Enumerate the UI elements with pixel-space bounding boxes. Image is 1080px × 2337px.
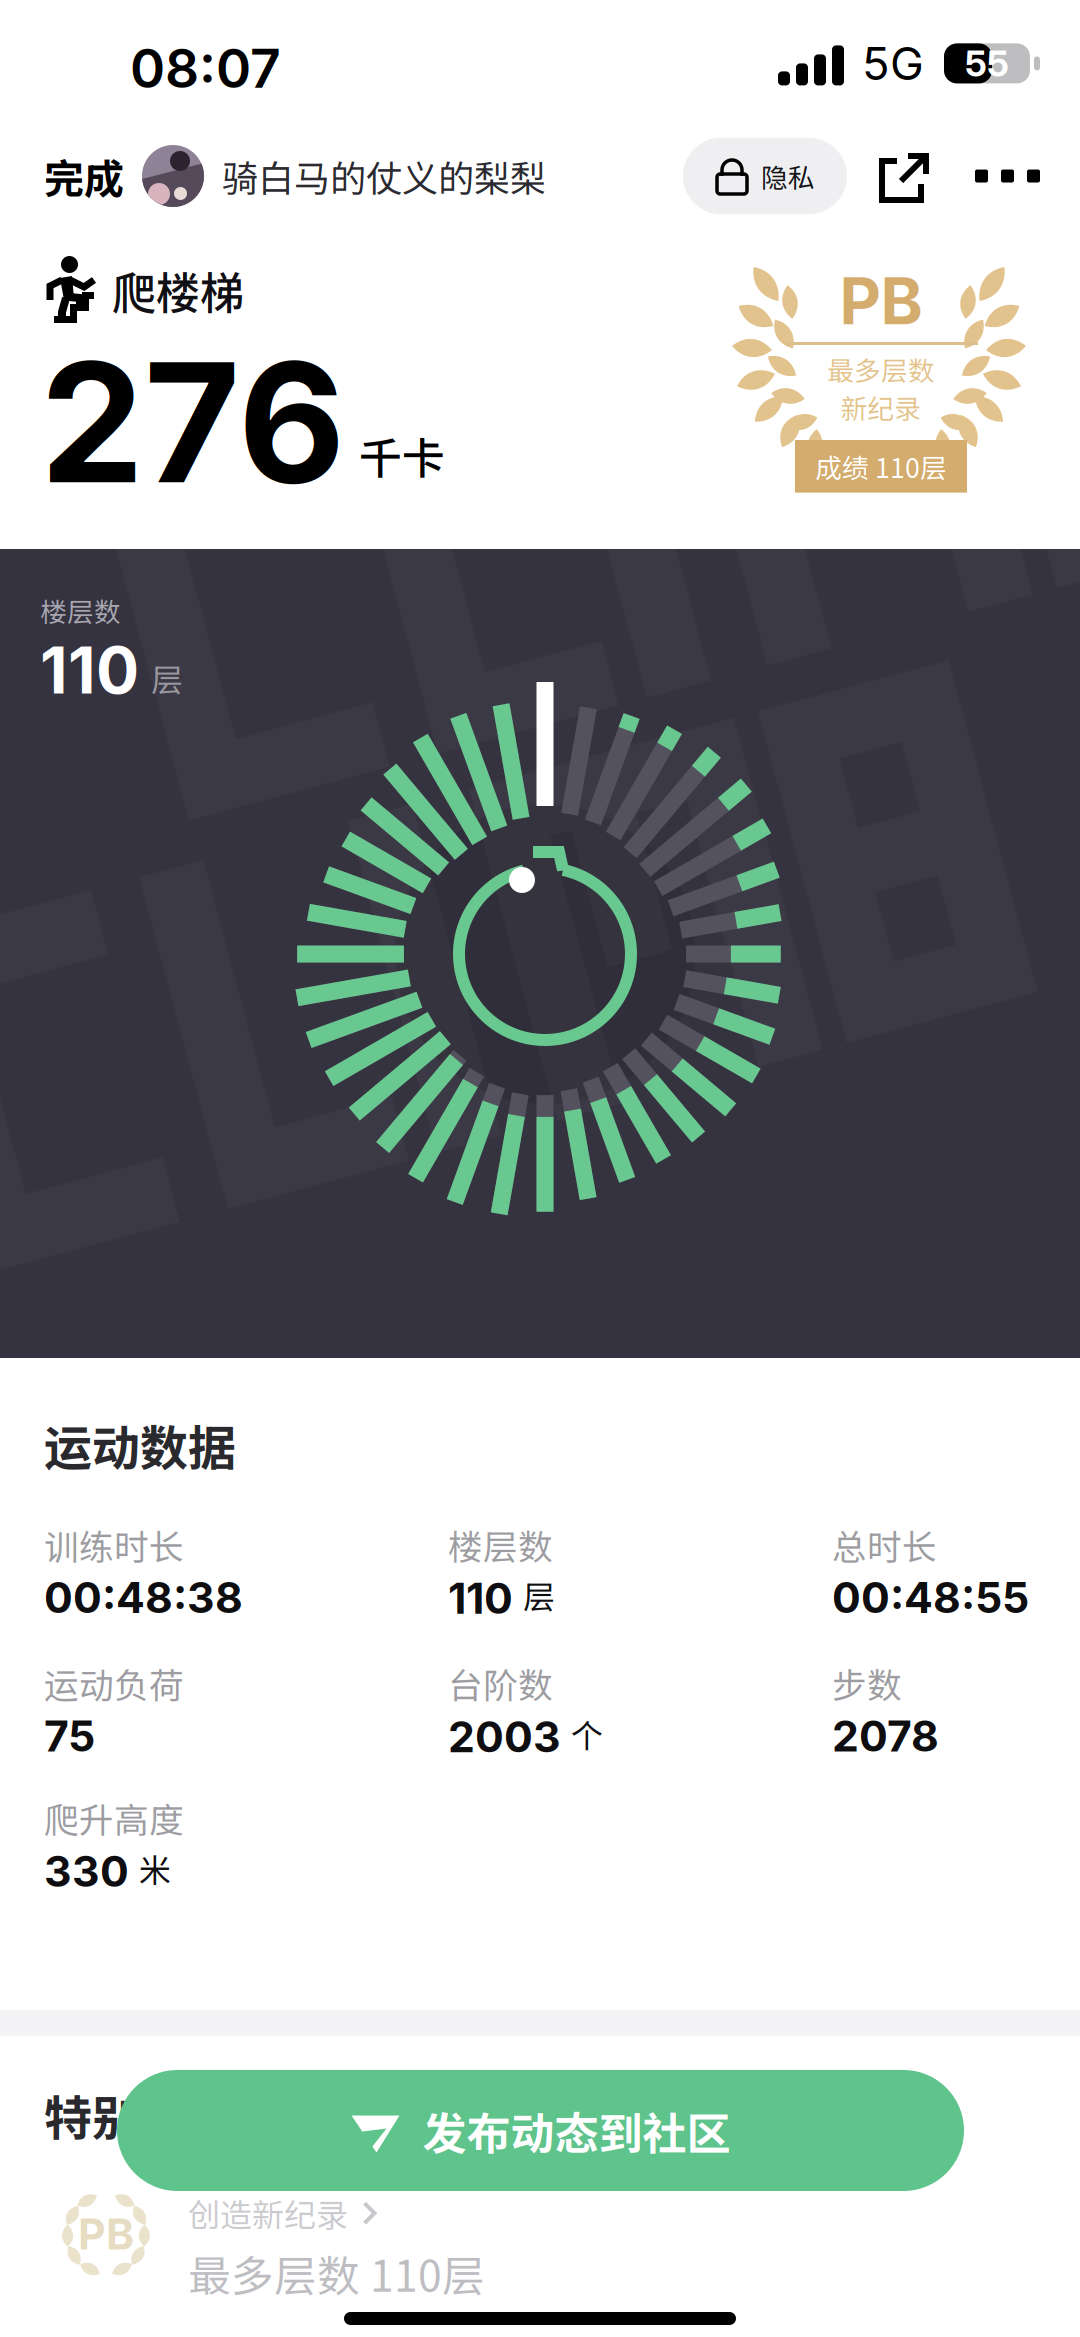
- staticText: 运动数据: [44, 1410, 236, 1479]
- staticText: 楼层数: [448, 1519, 553, 1570]
- staticText: PB: [839, 262, 922, 340]
- staticText: 爬楼梯: [112, 258, 244, 322]
- staticText: 成绩 110层: [815, 447, 947, 486]
- staticText: 训练时长: [44, 1519, 184, 1570]
- staticText: 完成: [44, 147, 124, 205]
- staticText: 110: [40, 632, 139, 709]
- staticText: 2003: [448, 1711, 561, 1762]
- staticText: 发布动态到社区: [422, 2099, 730, 2162]
- staticText: PB: [78, 2208, 134, 2260]
- staticText: 运动负荷: [44, 1658, 184, 1708]
- staticText: 爬升高度: [44, 1793, 184, 1843]
- staticText: 特别记录: [44, 2080, 236, 2149]
- staticText: 骑白马的仗义的梨梨: [222, 150, 546, 202]
- staticText: 08:07: [130, 36, 281, 100]
- staticText: 00:48:55: [832, 1572, 1029, 1623]
- staticText: 个: [571, 1710, 603, 1756]
- button[interactable]: 分享: [847, 125, 957, 227]
- button[interactable]: 骑白马的仗义的梨梨: [142, 124, 546, 228]
- staticText: 110: [448, 1572, 513, 1624]
- button[interactable]: 隐私: [683, 138, 847, 214]
- staticText: 楼层数: [40, 591, 121, 630]
- staticText: 55: [965, 42, 1009, 85]
- staticText: 层: [523, 1572, 555, 1618]
- staticText: 5G: [862, 36, 924, 91]
- button[interactable]: 更多: [957, 139, 1080, 212]
- staticText: 330: [44, 1845, 129, 1897]
- staticText: 总时长: [832, 1519, 937, 1570]
- staticText: 新纪录: [840, 388, 921, 426]
- staticText: 创造新纪录: [188, 2190, 348, 2236]
- staticText: 台阶数: [448, 1658, 553, 1708]
- staticText: 276: [40, 322, 345, 522]
- staticText: 最多层数 110层: [188, 2242, 485, 2304]
- button[interactable]: 发布动态到社区: [117, 2070, 964, 2191]
- staticText: 层: [151, 655, 183, 701]
- button[interactable]: 完成: [0, 124, 142, 228]
- staticText: 步数: [832, 1658, 902, 1708]
- staticText: 2078: [832, 1710, 939, 1762]
- staticText: 米: [139, 1845, 171, 1891]
- staticText: 00:48:38: [44, 1572, 243, 1623]
- staticText: 75: [44, 1710, 95, 1762]
- staticText: 隐私: [761, 157, 815, 195]
- staticText: 最多层数: [827, 350, 935, 388]
- staticText: 千卡: [359, 424, 445, 486]
